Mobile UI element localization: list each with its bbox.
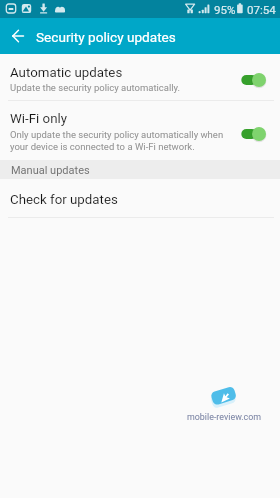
staticText: mobile-review.com xyxy=(187,412,262,422)
button[interactable]: Wi-Fi only xyxy=(0,101,280,160)
button[interactable]: Toggle setting xyxy=(241,126,267,142)
staticText: Only update the security policy automati… xyxy=(10,129,224,140)
staticText: Automatic updates xyxy=(10,65,123,81)
staticText: Wi-Fi only xyxy=(10,111,68,127)
button[interactable]: Toggle setting xyxy=(241,72,267,88)
staticText: Update the security policy automatically… xyxy=(10,82,181,93)
staticText: Check for updates xyxy=(10,192,118,208)
staticText: Manual updates xyxy=(11,164,90,177)
staticText: your device is connected to a Wi-Fi netw… xyxy=(10,141,195,152)
button[interactable]: Navigate up xyxy=(3,21,33,51)
staticText: 95% xyxy=(214,3,236,17)
staticText: 07:54 xyxy=(247,3,276,17)
button[interactable]: Check for updates xyxy=(0,179,280,217)
button[interactable]: Automatic updates xyxy=(0,54,280,100)
staticText: Security policy updates xyxy=(36,29,176,45)
